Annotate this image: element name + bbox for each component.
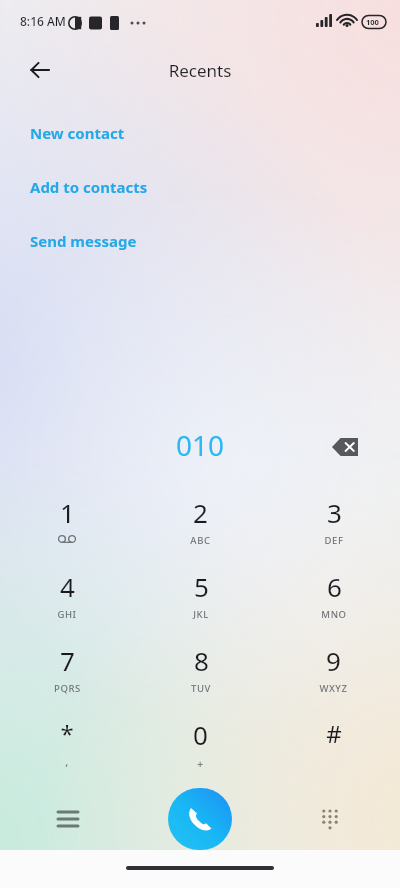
staticText: 0 (193, 717, 208, 752)
button[interactable]: 5 (134, 569, 267, 643)
staticText: 5 (194, 569, 209, 604)
staticText: PQRS (54, 682, 81, 695)
staticText: , (65, 754, 69, 769)
staticText: 1 (60, 495, 75, 530)
button[interactable]: New contact (0, 114, 400, 152)
button[interactable]: Back (18, 48, 62, 92)
button[interactable]: Send message (0, 222, 400, 260)
staticText: ABC (190, 534, 211, 547)
staticText: Recents (0, 59, 400, 82)
staticText: Send message (30, 231, 137, 251)
staticText: 8 (194, 643, 209, 678)
staticText: 4 (60, 569, 75, 604)
staticText: WXYZ (319, 682, 348, 695)
staticText: 7 (60, 643, 75, 678)
staticText: 2 (193, 495, 208, 530)
staticText: DEF (324, 534, 344, 547)
button[interactable]: 4 (0, 569, 134, 643)
staticText: TUV (191, 682, 211, 695)
staticText: 9 (326, 643, 341, 678)
button[interactable]: 3 (267, 495, 400, 569)
button[interactable]: 7 (0, 643, 134, 717)
staticText: # (326, 717, 342, 750)
button[interactable]: 2 (134, 495, 267, 569)
staticText: 6 (327, 569, 342, 604)
staticText: * (60, 717, 74, 750)
staticText: GHI (57, 608, 77, 621)
staticText: Add to contacts (30, 177, 148, 197)
button[interactable]: 8 (134, 643, 267, 717)
button[interactable]: 9 (267, 643, 400, 717)
button[interactable]: # (267, 717, 400, 791)
button[interactable]: Backspace (321, 423, 369, 471)
button[interactable]: Dialpad (306, 795, 354, 843)
button[interactable]: * (0, 717, 134, 791)
button[interactable]: 1 (0, 495, 134, 569)
staticText: New contact (30, 123, 125, 143)
button[interactable]: Call (168, 788, 232, 850)
staticText: 3 (327, 495, 342, 530)
button[interactable]: 6 (267, 569, 400, 643)
button[interactable]: Call log menu (44, 795, 92, 843)
staticText: + (197, 756, 204, 771)
button[interactable]: Add to contacts (0, 168, 400, 206)
staticText: 8:16 AM (20, 13, 66, 29)
button[interactable]: 0 (134, 717, 267, 791)
staticText: JKL (193, 608, 209, 621)
staticText: MNO (321, 608, 347, 621)
staticText: 010 (0, 426, 400, 464)
staticText: 100 (366, 17, 379, 27)
